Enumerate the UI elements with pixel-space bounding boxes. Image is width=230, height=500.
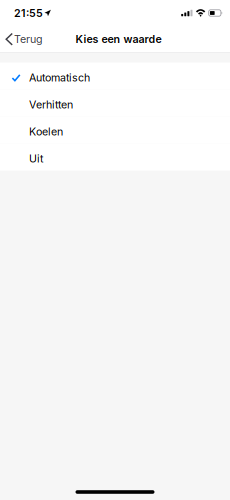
- staticText: Automatisch: [29, 71, 90, 84]
- button[interactable]: Terug: [0, 27, 49, 51]
- button[interactable]: Verhitten: [0, 89, 230, 116]
- button[interactable]: Automatisch: [0, 62, 230, 89]
- staticText: 21:55: [14, 6, 43, 19]
- staticText: Kies een waarde: [75, 32, 161, 45]
- button[interactable]: Uit: [0, 144, 230, 171]
- staticText: Verhitten: [29, 98, 73, 111]
- staticText: Uit: [29, 152, 43, 165]
- staticText: Terug: [14, 32, 43, 45]
- staticText: Koelen: [29, 125, 63, 138]
- button[interactable]: Koelen: [0, 116, 230, 143]
